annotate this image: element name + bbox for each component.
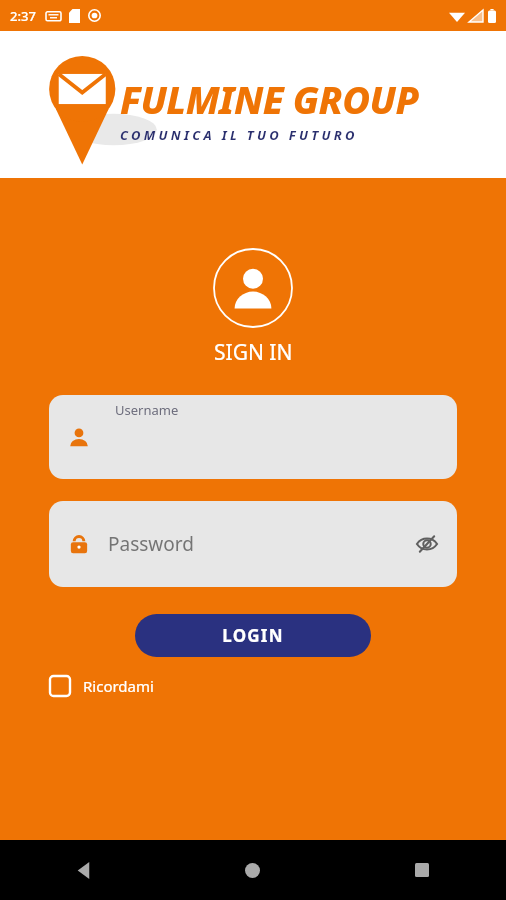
button[interactable]: Recent apps — [337, 840, 506, 900]
staticText: COMUNICA IL TUO FUTURO — [120, 126, 358, 144]
button[interactable]: Show password — [414, 531, 440, 557]
button[interactable]: Password — [49, 501, 457, 587]
button[interactable]: Username — [49, 395, 457, 479]
button[interactable]: LOGIN — [135, 614, 371, 657]
staticText: Username — [115, 401, 179, 419]
staticText: 2:37 — [10, 7, 36, 25]
staticText: FULMINE GROUP — [120, 73, 419, 125]
staticText: Ricordami — [83, 676, 154, 696]
button[interactable]: Home — [168, 840, 337, 900]
staticText: LOGIN — [222, 624, 284, 647]
button[interactable]: Back — [0, 840, 168, 900]
staticText: SIGN IN — [214, 338, 293, 367]
staticText: Password — [108, 531, 194, 557]
button[interactable]: Ricordami — [49, 675, 457, 697]
